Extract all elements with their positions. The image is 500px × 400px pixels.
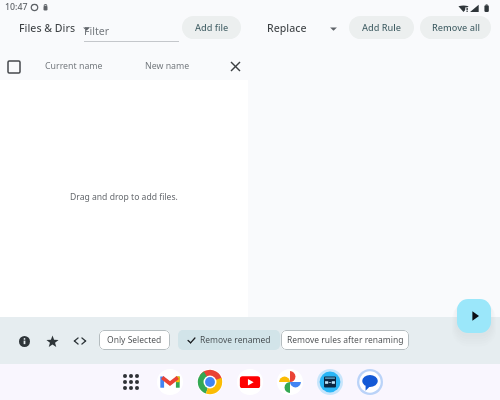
button[interactable]: Files & Dirs [19, 21, 91, 35]
button[interactable]: Favorites [42, 331, 62, 351]
button[interactable]: Only Selected [99, 330, 170, 350]
staticText: Drag and drop to add files. [70, 191, 178, 203]
button[interactable]: Filter [84, 17, 179, 42]
staticText: Filter [84, 24, 110, 38]
button[interactable]: Chrome [195, 367, 225, 397]
staticText: Only Selected [107, 334, 162, 346]
button[interactable]: Code [70, 331, 90, 351]
button[interactable]: Remove all [420, 16, 491, 39]
staticText: Remove renamed [200, 334, 271, 346]
button[interactable]: Photos [275, 367, 305, 397]
button[interactable]: Info [14, 331, 34, 351]
button[interactable]: Gmail [155, 367, 185, 397]
staticText: Files & Dirs [19, 21, 76, 35]
button[interactable]: Clear [228, 59, 243, 74]
button[interactable]: YouTube [235, 367, 265, 397]
staticText: Add Rule [362, 21, 402, 34]
staticText: Add file [195, 21, 229, 34]
button[interactable]: Replace [267, 21, 338, 35]
button[interactable]: Remove renamed [178, 330, 280, 350]
staticText: Remove rules after renaming [287, 334, 404, 346]
button[interactable]: Run [457, 299, 491, 333]
button[interactable]: Select all [8, 61, 20, 73]
staticText: Current name [45, 60, 103, 72]
staticText: New name [145, 60, 190, 72]
staticText: Replace [267, 21, 307, 35]
button[interactable]: News [315, 367, 345, 397]
button[interactable]: Remove rules after renaming [281, 330, 409, 350]
button[interactable]: Add Rule [349, 16, 414, 39]
staticText: Remove all [432, 21, 480, 34]
button[interactable]: All apps [117, 368, 145, 396]
staticText: 10:47 [5, 1, 28, 13]
button[interactable]: Add file [182, 16, 241, 39]
button[interactable]: Messages [355, 367, 385, 397]
